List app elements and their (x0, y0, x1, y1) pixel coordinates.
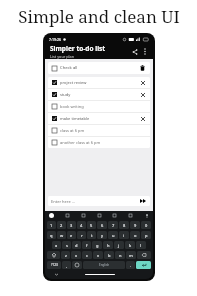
button[interactable]: p (141, 231, 151, 239)
staticText: v (97, 253, 100, 258)
button[interactable]: Keyboard tool 5 (128, 213, 133, 218)
staticText: . (130, 263, 132, 268)
button[interactable]: r (77, 231, 86, 239)
button[interactable]: English (83, 261, 125, 269)
button[interactable]: v (93, 251, 103, 259)
button[interactable]: project review (48, 77, 150, 88)
button[interactable]: Keyboard tool 2 (81, 213, 86, 218)
button[interactable]: More options (140, 47, 149, 56)
button[interactable]: 6 (97, 221, 107, 229)
button[interactable]: 1 (47, 221, 56, 229)
staticText: h (107, 243, 110, 248)
button[interactable]: d (72, 241, 81, 249)
button[interactable]: Remove study (139, 91, 146, 98)
staticText: 2 (60, 223, 63, 228)
button[interactable]: Remove project review (139, 79, 146, 86)
staticText: List your plan (50, 54, 75, 59)
staticText: n (119, 253, 122, 258)
button[interactable]: q (47, 231, 56, 239)
staticText: p (145, 233, 148, 238)
staticText: Check all (60, 65, 78, 71)
staticText: 1 (50, 223, 53, 228)
button[interactable]: Enter here ... (48, 196, 150, 206)
staticText: z (65, 253, 67, 258)
button[interactable]: Add task (139, 197, 147, 205)
staticText: a (55, 243, 58, 248)
button[interactable]: Keyboard tool 1 (65, 213, 70, 218)
staticText: u (112, 233, 115, 238)
staticText: e (70, 233, 73, 238)
button[interactable]: Backspace (137, 251, 151, 259)
button[interactable]: m (126, 251, 136, 259)
button[interactable]: Keyboard tool 3 (97, 213, 102, 218)
button[interactable]: a (52, 241, 61, 249)
staticText: ?123 (51, 263, 58, 267)
staticText: 7 (112, 223, 115, 228)
staticText: o (134, 233, 137, 238)
button[interactable]: x (71, 251, 81, 259)
button[interactable]: b (104, 251, 114, 259)
button[interactable]: j (114, 241, 124, 249)
staticText: project review (60, 80, 87, 85)
button[interactable]: 3 (67, 221, 76, 229)
button[interactable]: i (119, 231, 129, 239)
button[interactable]: , (62, 261, 71, 269)
button[interactable]: c (82, 251, 92, 259)
button[interactable]: Emoji (72, 261, 82, 269)
button[interactable]: 9 (130, 221, 140, 229)
button[interactable]: y (97, 231, 107, 239)
staticText: k (129, 243, 132, 248)
button[interactable]: class at 6 pm (48, 125, 150, 136)
button[interactable]: Google (49, 213, 54, 218)
button[interactable]: h (103, 241, 113, 249)
button[interactable]: book writing (48, 101, 150, 112)
staticText: Enter here ... (51, 199, 75, 204)
button[interactable]: k (125, 241, 135, 249)
staticText: Simple and clean UI (18, 5, 180, 28)
staticText: g (96, 243, 99, 248)
staticText: q (50, 233, 53, 238)
button[interactable]: study (48, 89, 150, 100)
button[interactable]: Enter (136, 261, 151, 269)
button[interactable]: o (130, 231, 140, 239)
button[interactable]: 4 (77, 221, 86, 229)
button[interactable]: Remove make timetable (139, 115, 146, 122)
button[interactable]: Share (130, 47, 140, 57)
staticText: b (108, 253, 111, 258)
button[interactable]: t (87, 231, 96, 239)
button[interactable]: ?123 (47, 261, 61, 269)
button[interactable]: make timetable (48, 113, 150, 124)
button[interactable]: n (115, 251, 125, 259)
staticText: c (86, 253, 88, 258)
staticText: another class at 6 pm (60, 140, 101, 145)
button[interactable]: l (136, 241, 146, 249)
staticText: 7:19:26 (49, 37, 61, 42)
button[interactable]: . (126, 261, 135, 269)
staticText: w (60, 233, 64, 238)
button[interactable]: 8 (119, 221, 129, 229)
button[interactable]: Keyboard tool 4 (112, 213, 117, 218)
button[interactable]: 2 (57, 221, 66, 229)
button[interactable]: Check all (48, 62, 150, 74)
button[interactable]: s (62, 241, 71, 249)
staticText: x (75, 253, 78, 258)
button[interactable]: e (67, 231, 76, 239)
button[interactable]: g (92, 241, 102, 249)
button[interactable]: 0 (141, 221, 151, 229)
button[interactable]: Delete all (138, 64, 146, 72)
button[interactable]: another class at 6 pm (48, 137, 150, 148)
staticText: i (123, 233, 125, 238)
staticText: class at 6 pm (60, 128, 85, 133)
button[interactable]: 7 (108, 221, 118, 229)
button[interactable]: 5 (87, 221, 96, 229)
button[interactable]: w (57, 231, 66, 239)
button[interactable]: z (61, 251, 70, 259)
button[interactable]: u (108, 231, 118, 239)
button[interactable]: Shift (47, 251, 60, 259)
staticText: f (86, 243, 88, 248)
staticText: book writing (60, 104, 84, 109)
button[interactable]: Voice input (144, 213, 149, 218)
staticText: English (99, 263, 110, 267)
staticText: 3 (70, 223, 73, 228)
button[interactable]: f (82, 241, 91, 249)
